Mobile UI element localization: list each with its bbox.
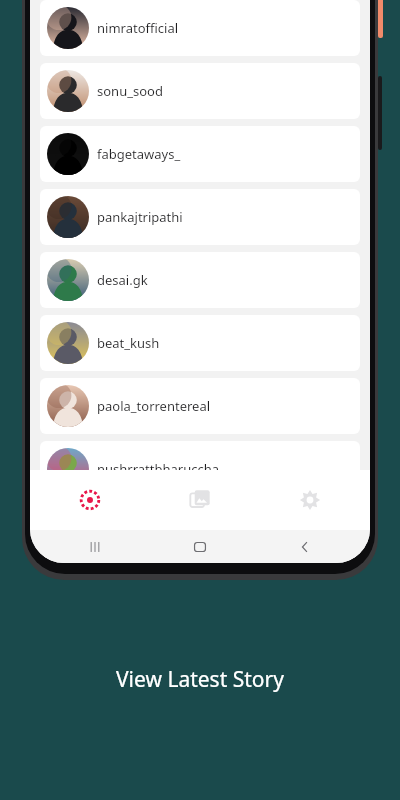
button[interactable]: nimratofficial (40, 504, 360, 560)
button[interactable]: Recents (55, 530, 135, 563)
button[interactable]: Gallery (150, 470, 250, 530)
button[interactable]: fabgetaways_ (40, 126, 360, 182)
button[interactable]: Settings (260, 470, 360, 530)
button[interactable]: Home (160, 530, 240, 563)
button[interactable]: beat_kush (40, 315, 360, 371)
button[interactable]: pankajtripathi (40, 189, 360, 245)
button[interactable]: Stories (40, 470, 140, 530)
button[interactable]: paola_torrentereal (40, 378, 360, 434)
button[interactable]: nimratofficial (40, 0, 360, 56)
staticText: nimratofficial (97, 19, 179, 37)
staticText: pankajtripathi (97, 208, 183, 226)
staticText: paola_torrentereal (97, 397, 211, 415)
button[interactable]: nushrrattbharuccha (40, 441, 360, 497)
staticText: View Latest Story (116, 665, 284, 694)
staticText: fabgetaways_ (97, 145, 181, 163)
staticText: nushrrattbharuccha (97, 460, 220, 478)
staticText: sonu_sood (97, 82, 163, 100)
button[interactable]: Back (265, 530, 345, 563)
staticText: nimratofficial (97, 523, 179, 541)
button[interactable]: sonu_sood (40, 63, 360, 119)
button[interactable]: desai.gk (40, 252, 360, 308)
staticText: beat_kush (97, 334, 160, 352)
staticText: desai.gk (97, 271, 148, 289)
